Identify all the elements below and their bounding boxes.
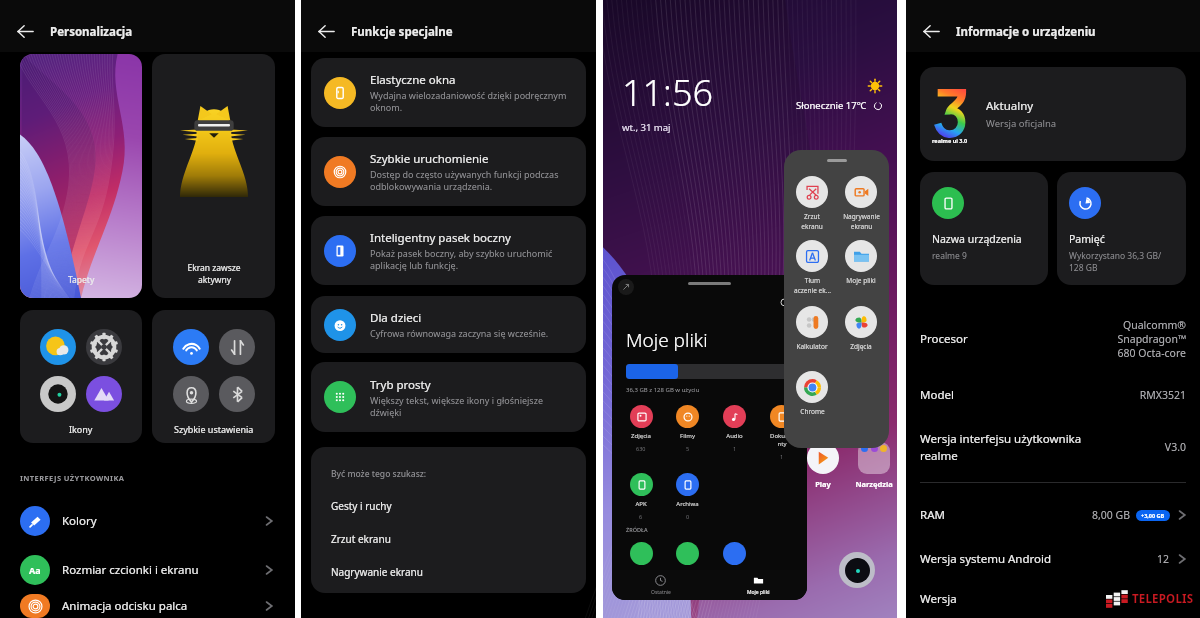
staticText: 5 xyxy=(686,445,690,452)
button[interactable]: Szybkie ustawienia xyxy=(152,310,275,443)
button[interactable]: Nagrywanie ekranu xyxy=(311,565,586,579)
staticText: Być może tego szukasz: xyxy=(331,468,427,480)
button[interactable]: Moje pliki xyxy=(837,240,885,285)
button[interactable]: Tryb prosty xyxy=(311,362,586,432)
staticText: RMX3521 xyxy=(1139,388,1186,402)
button[interactable]: Kolory xyxy=(0,496,295,545)
button[interactable]: Gesty i ruchy xyxy=(311,499,586,513)
staticText: Ekran zawsze xyxy=(187,262,241,274)
button[interactable]: Archiwa xyxy=(664,473,711,520)
staticText: wt., 31 maj xyxy=(622,121,671,134)
button[interactable]: Animacja odcisku palca xyxy=(0,594,295,618)
button[interactable]: Aa xyxy=(0,545,295,594)
staticText: Tapety xyxy=(68,274,95,286)
staticText: Nagrywanie ekranu xyxy=(843,212,880,231)
button[interactable]: Back xyxy=(313,18,340,45)
button[interactable]: Ekran zawsze xyxy=(152,54,275,298)
staticText: Szybkie uruchomienie xyxy=(370,151,489,167)
staticText: Dokume nty xyxy=(770,432,794,448)
staticText: Cyfrowa równowaga zaczyna się wcześnie. xyxy=(370,327,549,339)
staticText: Nazwa urządzenia xyxy=(932,232,1022,246)
staticText: Rozmiar czcionki i ekranu xyxy=(62,562,199,578)
staticText: Moje pliki xyxy=(626,327,708,353)
staticText: Procesor xyxy=(920,331,968,347)
button[interactable]: Tłum aczenie ek... xyxy=(788,240,836,295)
staticText: Ikony xyxy=(69,423,93,435)
staticText: 36,3 GB z 128 GB w użyciu xyxy=(626,386,700,394)
button[interactable]: Zdjęcia xyxy=(618,405,664,452)
staticText: Większy tekst, większe ikony i głośniejs… xyxy=(370,394,543,418)
staticText: Qualcomm® Snapdragon™ 680 Octa-core xyxy=(1117,318,1186,360)
staticText: 1 xyxy=(733,445,737,452)
button[interactable]: Wersja systemu Android xyxy=(906,537,1200,580)
staticText: V3.0 xyxy=(1164,440,1186,454)
button[interactable]: Zrzut ekranu xyxy=(311,532,586,546)
button[interactable]: Tapety xyxy=(20,54,142,298)
staticText: Szybkie ustawienia xyxy=(174,423,254,435)
button[interactable]: Zrzut ekranu xyxy=(788,176,836,231)
button[interactable]: Audio xyxy=(711,405,758,452)
staticText: realme 9 xyxy=(932,250,967,262)
staticText: TELEPOLIS xyxy=(1132,591,1194,607)
button[interactable]: TELEPOLIS xyxy=(1106,589,1194,609)
button[interactable]: Inteligentny pasek boczny xyxy=(311,216,586,285)
staticText: ŹRÓDŁA xyxy=(626,526,648,533)
button[interactable]: Kalkulator xyxy=(788,306,836,351)
staticText: Wersja systemu Android xyxy=(920,551,1052,567)
staticText: aktywny xyxy=(198,274,231,286)
staticText: Tryb prosty xyxy=(370,377,431,393)
staticText: 0 xyxy=(686,513,690,520)
button[interactable]: Narzędzia xyxy=(851,442,897,489)
button[interactable]: Search xyxy=(777,295,793,311)
button[interactable]: Dokume nty xyxy=(758,405,805,460)
staticText: 12 xyxy=(1157,552,1170,566)
button[interactable]: Szybkie uruchomienie xyxy=(311,137,586,206)
button[interactable]: Filmy xyxy=(664,405,711,452)
staticText: 6 xyxy=(639,513,643,520)
button[interactable]: Nazwa urządzenia xyxy=(920,172,1048,285)
button[interactable]: Chrome xyxy=(788,371,836,416)
staticText: Wydajna wielozadaniowość dzięki podręczn… xyxy=(370,89,567,113)
staticText: Play xyxy=(815,479,831,489)
staticText: Aktualny xyxy=(986,98,1034,114)
button[interactable]: Expand xyxy=(618,279,634,295)
staticText: Elastyczne okna xyxy=(370,72,456,88)
button[interactable]: RAM xyxy=(906,493,1200,537)
button[interactable]: Dla dzieci xyxy=(311,296,586,353)
staticText: 11:56 xyxy=(622,68,714,117)
staticText: Inteligentny pasek boczny xyxy=(370,230,511,246)
staticText: Ostatnie xyxy=(651,589,671,596)
staticText: Wersja xyxy=(920,591,957,607)
staticText: Wykorzystano 36,3 GB/ 128 GB xyxy=(1069,250,1178,274)
staticText: realme ui 3.0 xyxy=(932,137,968,144)
button[interactable]: Elastyczne okna xyxy=(311,58,586,127)
button[interactable]: APK xyxy=(618,473,664,520)
button[interactable]: Wersja xyxy=(906,580,1200,618)
staticText: Zdjęcia xyxy=(850,342,872,351)
staticText: Pokaż pasek boczny, aby szybko uruchomić… xyxy=(370,247,553,271)
button[interactable]: Back xyxy=(918,18,945,45)
button[interactable]: Nagrywanie ekranu xyxy=(837,176,885,231)
staticText: 630 xyxy=(636,445,646,452)
button[interactable]: Back xyxy=(12,18,39,45)
staticText: Tłum aczenie ek... xyxy=(794,276,831,295)
button[interactable]: Pamięć xyxy=(1057,172,1186,285)
staticText: Animacja odcisku palca xyxy=(62,598,188,614)
button[interactable]: Zdjęcia xyxy=(837,306,885,351)
staticText: +3,00 GB xyxy=(1141,512,1165,519)
staticText: Słonecznie 17℃ xyxy=(796,99,867,112)
button[interactable]: Moje pliki xyxy=(709,575,807,596)
button[interactable]: Ostatnie xyxy=(612,575,709,596)
staticText: Chrome xyxy=(800,407,825,416)
button[interactable]: realme ui 3.0 xyxy=(920,67,1186,161)
staticText: Filmy xyxy=(680,432,695,440)
staticText: Funkcje specjalne xyxy=(351,24,453,40)
staticText: Dla dzieci xyxy=(370,310,422,326)
button[interactable]: Play xyxy=(801,442,845,489)
staticText: Kalkulator xyxy=(796,342,828,351)
staticText: Informacje o urządzeniu xyxy=(956,24,1096,40)
staticText: Moje pliki xyxy=(846,276,876,285)
staticText: Dostęp do często używanych funkcji podcz… xyxy=(370,168,559,192)
button[interactable]: Ikony xyxy=(20,310,142,443)
staticText: Wersja interfejsu użytkownika realme xyxy=(920,431,1085,463)
